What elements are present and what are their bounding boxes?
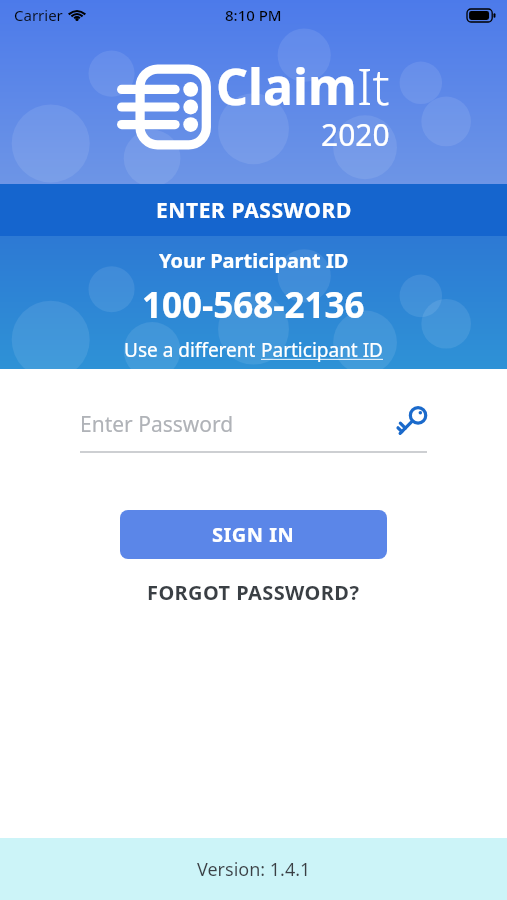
staticText: 100-568-2136 — [142, 281, 365, 329]
staticText: 2020 — [321, 114, 390, 155]
button[interactable]: Show password — [395, 407, 427, 437]
staticText: Your Participant ID — [159, 247, 349, 274]
staticText: Enter Password — [80, 410, 234, 439]
staticText: Version: 1.4.1 — [197, 857, 311, 882]
staticText: Participant ID — [261, 337, 383, 363]
button[interactable]: Enter Password — [80, 401, 427, 453]
staticText: FORGOT PASSWORD? — [147, 579, 360, 606]
staticText: Carrier — [14, 5, 63, 25]
staticText: SIGN IN — [212, 521, 295, 548]
button[interactable]: Use a different — [116, 335, 391, 365]
staticText: Claim — [216, 52, 357, 120]
button[interactable]: FORGOT PASSWORD? — [131, 573, 376, 612]
staticText: It — [357, 52, 390, 120]
staticText: 8:10 PM — [225, 5, 282, 25]
staticText: ENTER PASSWORD — [156, 196, 352, 225]
staticText: Use a different — [124, 337, 261, 363]
button[interactable]: SIGN IN — [120, 510, 387, 559]
